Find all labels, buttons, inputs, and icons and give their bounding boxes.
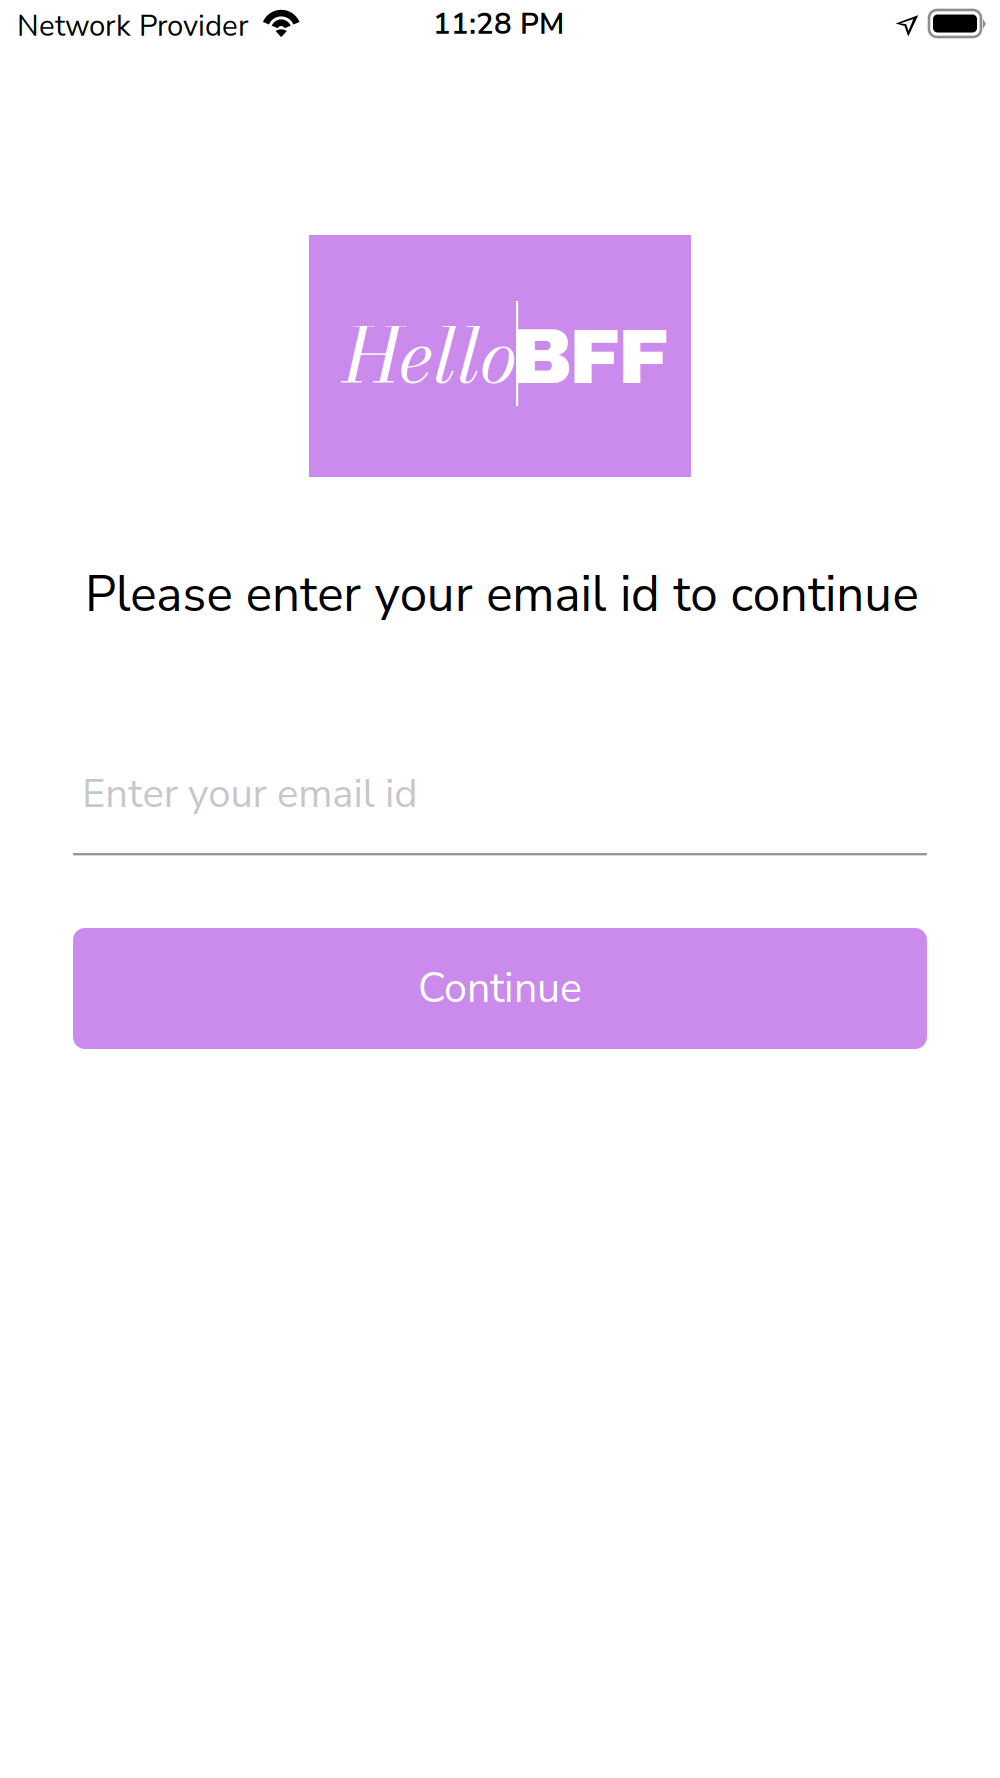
staticText: Continue	[418, 960, 582, 1017]
staticText: Hello	[344, 297, 517, 413]
staticText: 11:28 PM	[433, 4, 564, 44]
staticText: Please enter your email id to continue	[85, 561, 918, 628]
staticText: BFF	[512, 315, 670, 399]
button[interactable]: Continue	[73, 928, 927, 1049]
staticText: Network Provider	[17, 6, 249, 46]
button[interactable]: Enter your email id	[73, 753, 927, 857]
staticText: Enter your email id	[82, 766, 417, 821]
